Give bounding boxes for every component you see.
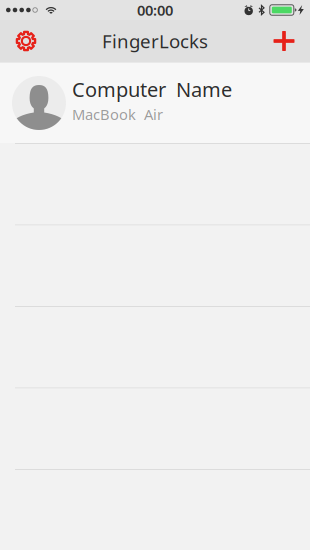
- staticText: Computer Name: [72, 76, 232, 103]
- staticText: FingerLocks: [102, 29, 208, 53]
- button[interactable]: Computer Name: [0, 63, 310, 143]
- staticText: MacBook Air: [72, 104, 163, 124]
- staticText: 00:00: [137, 0, 173, 20]
- button[interactable]: Add: [261, 20, 307, 62]
- button[interactable]: Settings: [3, 20, 49, 62]
